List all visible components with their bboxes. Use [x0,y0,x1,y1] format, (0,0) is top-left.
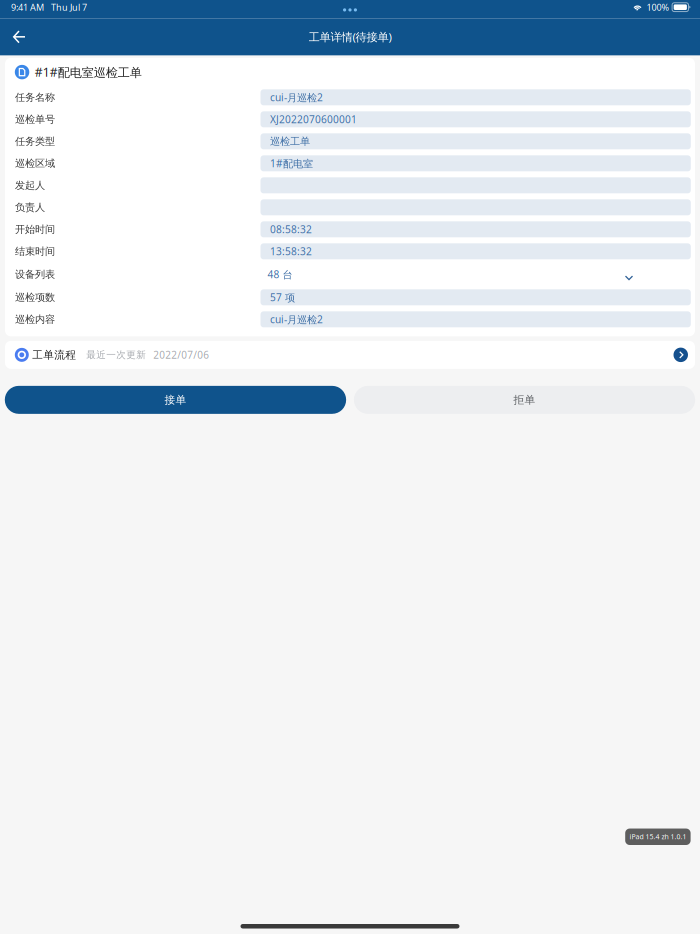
button[interactable]: 接单 [5,386,346,414]
button[interactable]: Back [0,21,37,52]
button[interactable]: 拒单 [354,386,695,414]
staticText: 57 项 [270,290,295,304]
staticText: 接单 [164,393,186,406]
staticText: cui-月巡检2 [270,312,323,326]
staticText: 任务名称 [15,91,55,104]
staticText: 巡检区域 [15,157,55,170]
staticText: 最近一次更新 [86,349,146,361]
staticText: 负责人 [15,201,45,214]
staticText: 48 台 [267,267,292,281]
staticText: 设备列表 [15,268,55,281]
staticText: 任务类型 [15,135,55,148]
staticText: Thu Jul 7 [51,1,87,13]
staticText: cui-月巡检2 [270,90,323,104]
staticText: iPad 15.4 zh 1.0.1 [629,832,686,841]
staticText: 2022/07/06 [153,348,209,362]
staticText: 08:58:32 [270,222,312,236]
staticText: 巡检工单 [270,135,310,148]
staticText: #1#配电室巡检工单 [35,64,142,80]
staticText: 工单流程 [32,348,76,361]
staticText: 开始时间 [15,223,55,236]
staticText: 巡检单号 [15,113,55,126]
staticText: 工单详情(待接单) [308,29,391,44]
staticText: 1#配电室 [270,156,313,170]
staticText: 结束时间 [15,245,55,258]
staticText: 9:41 AM [11,1,44,13]
staticText: 巡检内容 [15,313,55,326]
button[interactable]: 工单流程 [5,341,695,369]
staticText: 13:58:32 [270,244,312,258]
staticText: 巡检项数 [15,291,55,304]
staticText: 100% [647,1,670,13]
staticText: 发起人 [15,179,45,192]
staticText: 拒单 [513,393,535,406]
staticText: XJ2022070600001 [270,112,357,126]
